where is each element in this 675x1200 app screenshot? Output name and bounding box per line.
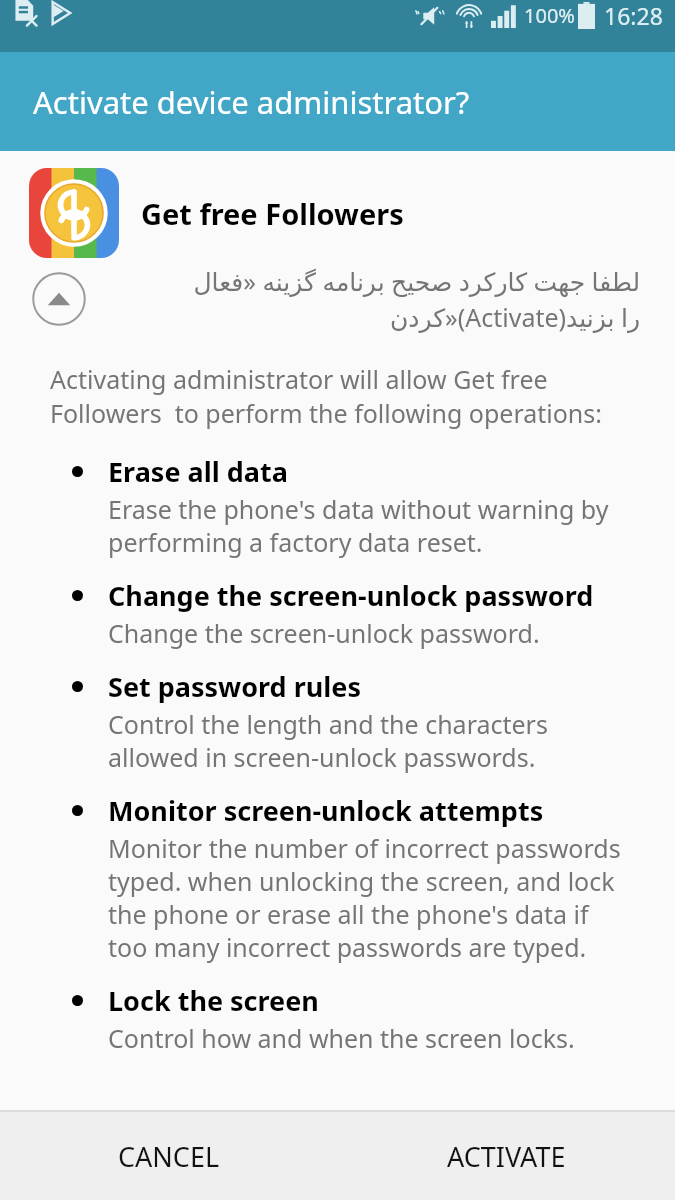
staticText: Activate device administrator? xyxy=(33,81,470,123)
staticText: Control the length and the characters al… xyxy=(108,707,627,774)
staticText: 16:28 xyxy=(604,0,663,31)
staticText: Change the screen-unlock password. xyxy=(108,616,540,650)
staticText: Monitor the number of incorrect password… xyxy=(108,831,627,964)
staticText: Change the screen-unlock password xyxy=(108,577,594,614)
staticText: Monitor screen-unlock attempts xyxy=(108,792,544,829)
staticText: Lock the screen xyxy=(108,982,319,1019)
staticText: Erase all data xyxy=(108,453,288,490)
staticText: Erase the phone's data without warning b… xyxy=(108,492,627,559)
staticText: 100% xyxy=(524,2,575,29)
staticText: Set password rules xyxy=(108,668,362,705)
staticText: Activating administrator will allow Get … xyxy=(50,362,615,431)
staticText: CANCEL xyxy=(118,1138,220,1175)
staticText: لطفا جهت کارکرد صحیح برنامه گزینه «فعال … xyxy=(99,264,640,334)
button[interactable]: ACTIVATE xyxy=(337,1112,675,1200)
staticText: Control how and when the screen locks. xyxy=(108,1021,575,1055)
button[interactable]: Collapse details xyxy=(29,269,89,329)
staticText: Get free Followers xyxy=(141,194,404,233)
button[interactable]: CANCEL xyxy=(0,1112,337,1200)
staticText: ACTIVATE xyxy=(447,1138,566,1175)
